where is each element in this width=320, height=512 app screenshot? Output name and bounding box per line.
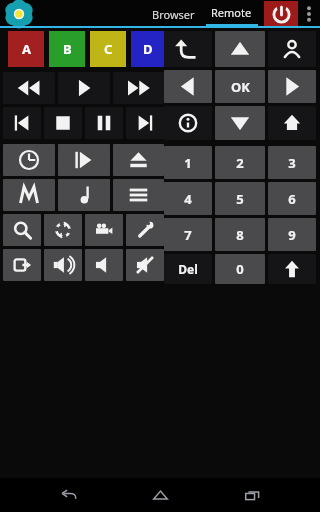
button[interactable]: Settings [126, 214, 164, 246]
button[interactable]: Next [126, 107, 164, 139]
button[interactable]: 2 [215, 146, 265, 179]
staticText: 3 [288, 154, 296, 172]
button[interactable]: Volume down [85, 249, 123, 281]
button[interactable]: Mute [126, 249, 164, 281]
staticText: OK [231, 78, 250, 96]
button[interactable]: B [49, 31, 85, 67]
button[interactable]: Timer [3, 144, 55, 176]
staticText: 1 [184, 154, 192, 172]
button[interactable]: Right [268, 70, 316, 103]
button[interactable]: Video [85, 214, 123, 246]
button[interactable]: Play [58, 72, 110, 104]
button[interactable]: 3 [268, 146, 316, 179]
button[interactable]: Rewind [3, 72, 55, 104]
staticText: B [63, 40, 72, 58]
staticText: Remote [211, 5, 252, 20]
button[interactable]: App logo [6, 1, 32, 27]
button[interactable]: Movies [3, 179, 55, 211]
staticText: A [22, 40, 31, 58]
button[interactable]: 5 [215, 182, 265, 215]
button[interactable]: C [90, 31, 126, 67]
button[interactable]: 0 [215, 254, 265, 284]
button[interactable]: 8 [215, 218, 265, 251]
staticText: 8 [236, 226, 244, 244]
button[interactable]: 4 [164, 182, 212, 215]
button[interactable]: Playlist [113, 179, 164, 211]
button[interactable]: Music [58, 179, 110, 211]
staticText: 9 [288, 226, 296, 244]
staticText: Browser [152, 7, 195, 22]
button[interactable]: More options [298, 0, 320, 28]
staticText: 2 [236, 154, 244, 172]
button[interactable]: A [8, 31, 44, 67]
staticText: D [143, 40, 153, 58]
button[interactable]: Left [164, 70, 212, 103]
button[interactable]: Info [164, 106, 212, 140]
button[interactable]: Repeat [44, 214, 82, 246]
staticText: 6 [288, 190, 296, 208]
button[interactable]: Recents [229, 478, 275, 512]
button[interactable]: Page up [268, 254, 316, 284]
button[interactable]: Remote [203, 0, 260, 28]
button[interactable]: Down [215, 106, 265, 140]
staticText: C [104, 40, 113, 58]
staticText: 4 [184, 190, 192, 208]
staticText: Del [178, 261, 198, 277]
button[interactable]: Up [215, 31, 265, 67]
button[interactable]: 9 [268, 218, 316, 251]
staticText: 0 [236, 260, 244, 278]
staticText: 5 [236, 190, 244, 208]
button[interactable]: 1 [164, 146, 212, 179]
button[interactable]: Volume up [44, 249, 82, 281]
button[interactable]: Power [264, 1, 298, 28]
button[interactable]: Eject [113, 144, 164, 176]
button[interactable]: D [131, 31, 164, 67]
button[interactable]: Previous [3, 107, 41, 139]
button[interactable]: Back [46, 478, 92, 512]
button[interactable]: Profile [268, 31, 316, 67]
button[interactable]: Search [3, 214, 41, 246]
button[interactable]: Pause [85, 107, 123, 139]
button[interactable]: Home [268, 106, 316, 140]
button[interactable]: OK [215, 70, 265, 103]
button[interactable]: 6 [268, 182, 316, 215]
button[interactable]: 7 [164, 218, 212, 251]
button[interactable]: Del [164, 254, 212, 284]
button[interactable]: Browser [144, 0, 203, 28]
button[interactable]: Back [164, 31, 212, 67]
button[interactable]: Stop [44, 107, 82, 139]
button[interactable]: Home [137, 478, 183, 512]
button[interactable]: Step forward [58, 144, 110, 176]
button[interactable]: Fast forward [113, 72, 164, 104]
button[interactable]: Exit [3, 249, 41, 281]
staticText: 7 [184, 226, 192, 244]
